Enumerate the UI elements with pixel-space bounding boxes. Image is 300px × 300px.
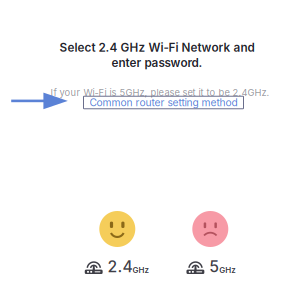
staticText: If your Wi-Fi is 5GHz, please set it to … — [50, 87, 269, 98]
staticText: GHz — [219, 265, 236, 275]
staticText: enter password. — [111, 56, 202, 70]
staticText: 5 — [209, 257, 219, 276]
staticText: Common router setting method — [89, 96, 237, 109]
staticText: GHz — [133, 265, 150, 275]
button[interactable]: Common router setting method — [83, 96, 243, 109]
staticText: Select 2.4 GHz Wi-Fi Network and — [59, 40, 254, 55]
staticText: 2.4 — [108, 257, 133, 276]
